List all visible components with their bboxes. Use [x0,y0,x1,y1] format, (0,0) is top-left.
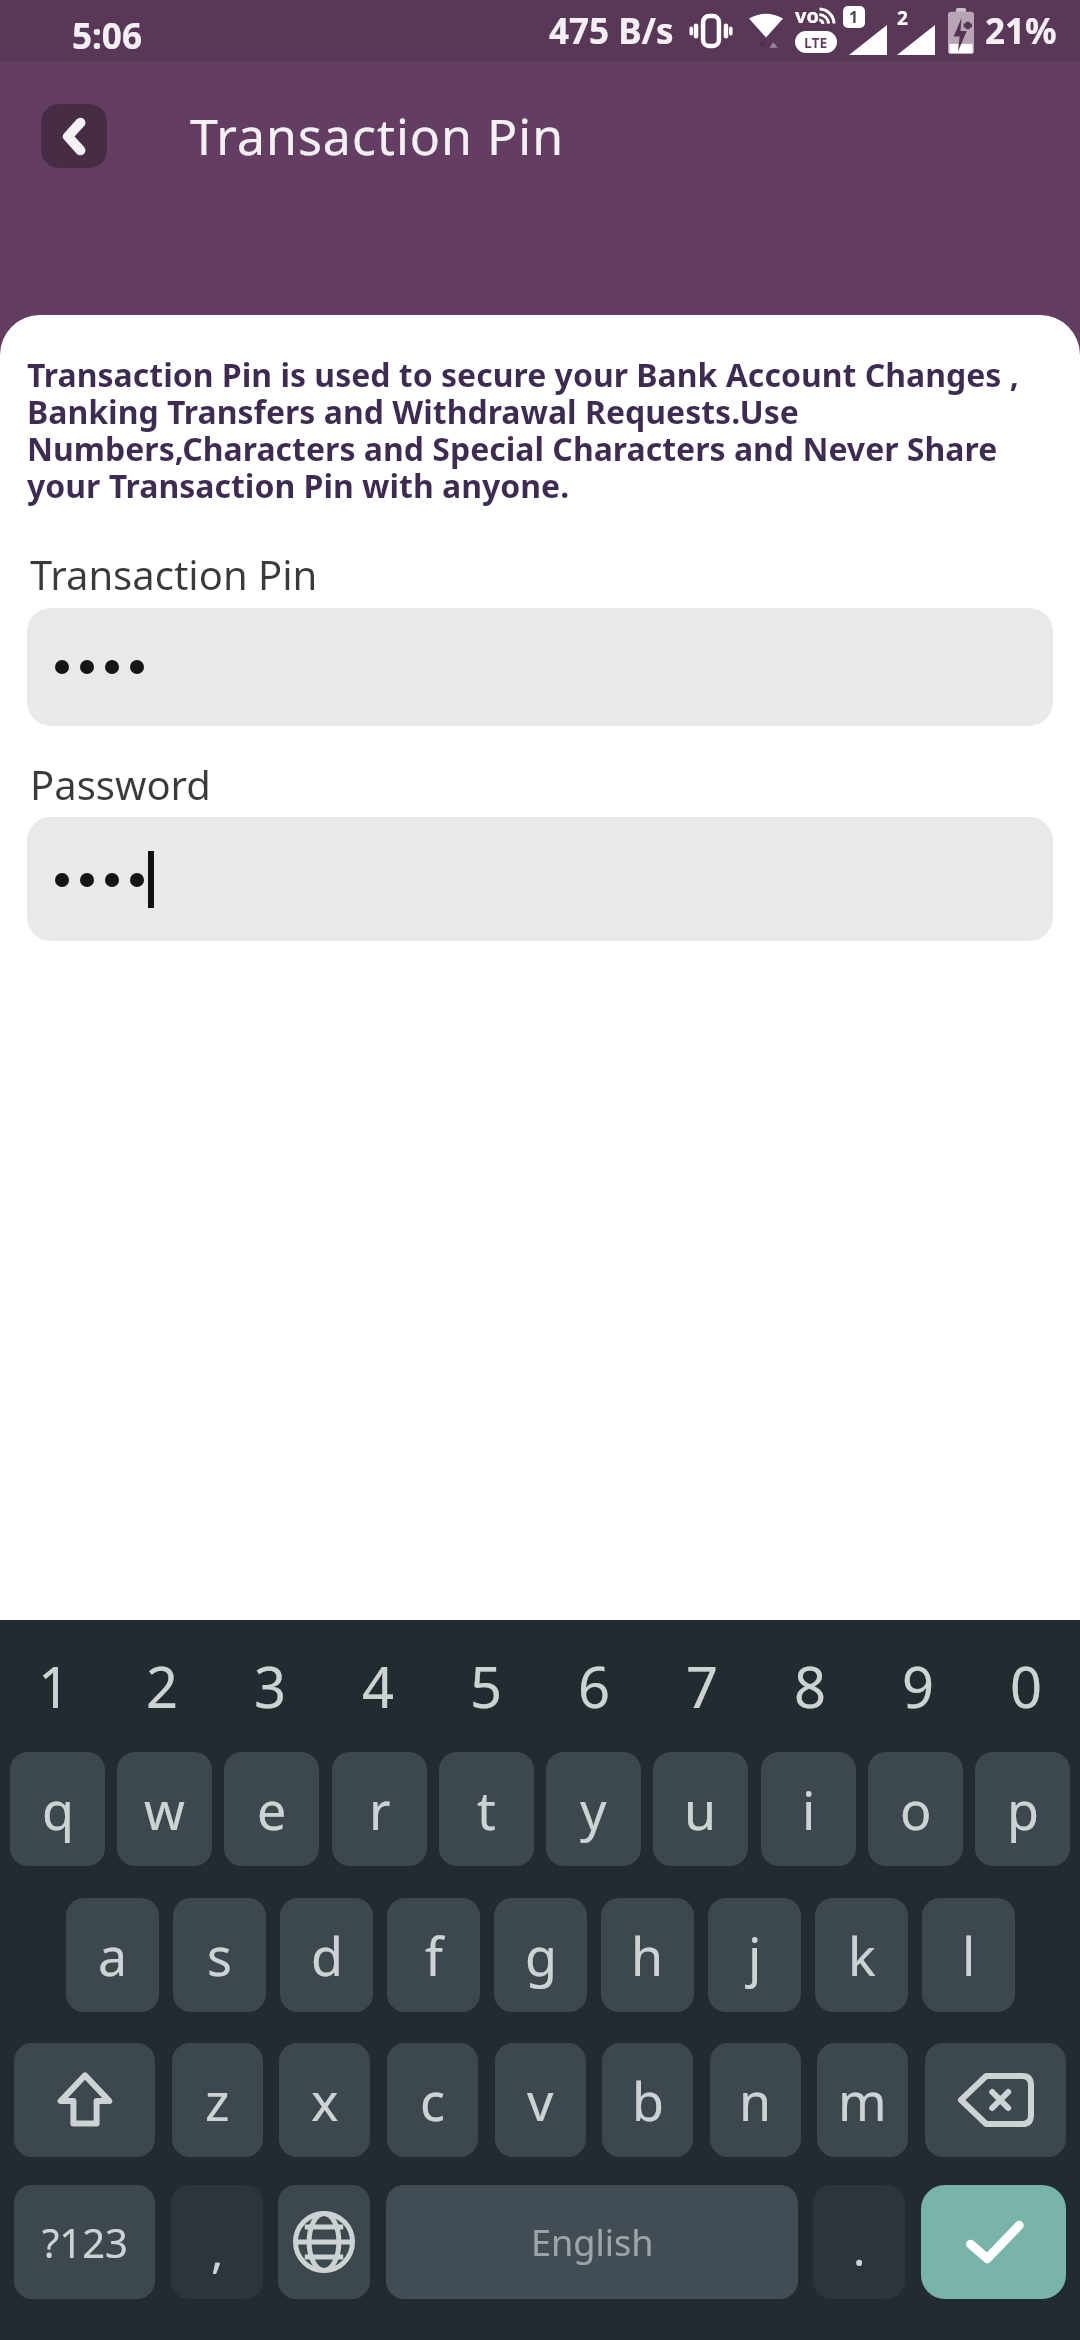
button[interactable]: z [172,2043,263,2157]
staticText: 2 [146,1648,179,1724]
staticText: c [420,2065,445,2136]
button[interactable]: u [653,1752,748,1866]
button[interactable]: 9 [864,1620,972,1752]
staticText: j [748,1920,762,1991]
button[interactable]: 3 [216,1620,324,1752]
button[interactable]: n [710,2043,801,2157]
staticText: z [205,2065,230,2136]
staticText: 9 [902,1648,935,1724]
staticText: g [525,1920,557,1991]
staticText: 7 [686,1648,719,1724]
staticText: s [207,1920,232,1991]
button[interactable]: , [171,2185,263,2299]
button[interactable]: p [975,1752,1070,1866]
staticText: Transaction Pin is used to secure your B… [27,353,1053,507]
staticText: d [311,1920,343,1991]
button[interactable]: v [495,2043,586,2157]
button[interactable]: 0 [972,1620,1080,1752]
button[interactable]: t [439,1752,534,1866]
button[interactable]: 4 [324,1620,432,1752]
button[interactable] [921,2185,1066,2299]
staticText: a [98,1920,128,1991]
staticText: q [42,1774,74,1845]
staticText: . [853,2217,866,2280]
button[interactable] [925,2043,1066,2157]
staticText: 3 [254,1648,287,1724]
staticText: English [531,2218,654,2267]
button[interactable]: j [708,1898,801,2012]
staticText: i [802,1774,816,1845]
button[interactable]: e [224,1752,319,1866]
button[interactable]: d [280,1898,373,2012]
button[interactable]: . [813,2185,905,2299]
button[interactable] [278,2185,370,2299]
button[interactable]: 1 [0,1620,108,1752]
staticText: 5 [470,1648,503,1724]
staticText: o [900,1774,932,1845]
staticText: vo [795,2,819,29]
button[interactable]: 8 [756,1620,864,1752]
staticText: m [838,2065,887,2136]
button[interactable]: q [10,1752,105,1866]
button[interactable]: 7 [648,1620,756,1752]
button[interactable] [27,817,1053,941]
button[interactable]: 2 [108,1620,216,1752]
button[interactable]: y [546,1752,641,1866]
staticText: t [477,1774,496,1845]
button[interactable]: o [868,1752,963,1866]
staticText: 21% [985,7,1057,55]
staticText: LTE [804,33,828,52]
staticText: Transaction Pin [30,547,318,601]
staticText: Password [30,757,211,811]
staticText: 6 [578,1648,611,1724]
button[interactable]: ?123 [14,2185,155,2299]
staticText: 2 [897,5,908,31]
button[interactable]: 5 [432,1620,540,1752]
staticText: 1 [849,6,859,28]
staticText: e [257,1774,287,1845]
staticText: r [369,1774,391,1845]
staticText: k [848,1920,876,1991]
staticText: y [580,1774,607,1845]
button[interactable]: x [279,2043,370,2157]
staticText: , [211,2219,224,2282]
button[interactable]: s [173,1898,266,2012]
button[interactable]: b [602,2043,693,2157]
staticText: 0 [1010,1648,1043,1724]
staticText: 475 B/s [549,7,674,55]
button[interactable]: c [387,2043,478,2157]
button[interactable]: r [332,1752,427,1866]
staticText: 4 [362,1648,395,1724]
staticText: p [1007,1774,1039,1845]
button[interactable] [14,2043,155,2157]
staticText: 8 [794,1648,827,1724]
button[interactable]: g [494,1898,587,2012]
staticText: ?123 [42,2215,128,2269]
button[interactable] [27,608,1053,726]
button[interactable]: 6 [540,1620,648,1752]
staticText: u [684,1774,717,1845]
button[interactable]: h [601,1898,694,2012]
button[interactable]: w [117,1752,212,1866]
staticText: n [739,2065,772,2136]
button[interactable] [41,104,107,168]
button[interactable]: f [387,1898,480,2012]
staticText: l [962,1920,976,1991]
button[interactable]: l [922,1898,1015,2012]
staticText: h [631,1920,664,1991]
staticText: w [144,1774,185,1845]
staticText: 5:06 [72,12,142,60]
button[interactable]: k [815,1898,908,2012]
staticText: v [527,2065,554,2136]
button[interactable]: m [817,2043,908,2157]
button[interactable]: a [66,1898,159,2012]
staticText: f [425,1920,443,1991]
button[interactable]: i [761,1752,856,1866]
staticText: x [311,2065,339,2136]
staticText: Transaction Pin [190,102,565,170]
staticText: b [632,2065,664,2136]
button[interactable]: English [386,2185,798,2299]
staticText: 1 [38,1648,71,1724]
